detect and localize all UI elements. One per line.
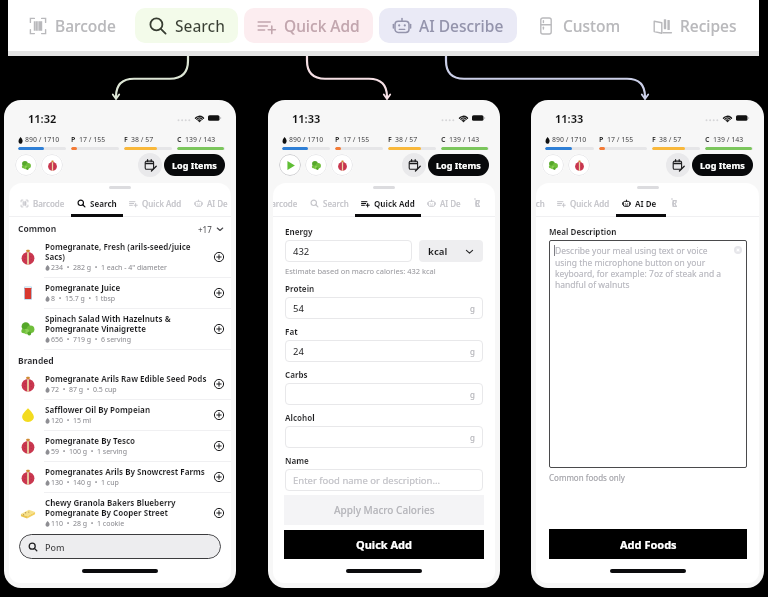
- button[interactable]: Calendar: [402, 153, 426, 177]
- button[interactable]: Search: [135, 8, 238, 43]
- staticText: Apply Macro Calories: [334, 503, 435, 517]
- button[interactable]: Pomegranate Arils Raw Edible Seed Pods: [9, 369, 231, 399]
- button[interactable]: Pomegranate By Tesco: [9, 431, 231, 461]
- staticText: Energy: [285, 226, 313, 237]
- staticText: +17: [198, 224, 212, 235]
- staticText: Quick Add: [356, 537, 413, 552]
- staticText: Barcode: [55, 15, 116, 36]
- staticText: g: [470, 346, 475, 357]
- staticText: Quick Add: [374, 198, 415, 209]
- button[interactable]: AI Describe: [379, 8, 517, 43]
- staticText: Pomegranate Juice: [45, 282, 121, 293]
- button[interactable]: Food shortcut: [568, 154, 590, 176]
- button[interactable]: Custom: [523, 8, 634, 43]
- staticText: Log Items: [700, 159, 745, 171]
- button[interactable]: Apply Macro Calories: [284, 495, 484, 525]
- staticText: Barcode: [33, 198, 65, 209]
- button[interactable]: Food shortcut: [41, 154, 63, 176]
- button[interactable]: 54: [285, 297, 483, 319]
- button[interactable]: Quick Add: [551, 192, 616, 217]
- button[interactable]: Search: [71, 192, 123, 217]
- staticText: 890 / 1710: [25, 135, 60, 145]
- button[interactable]: Quick Add: [244, 8, 373, 43]
- staticText: Barcode: [273, 198, 298, 209]
- button[interactable]: Food shortcut: [305, 154, 327, 176]
- button[interactable]: Search: [536, 192, 551, 217]
- staticText: 38 / 57: [395, 135, 418, 145]
- staticText: P: [71, 135, 76, 145]
- button[interactable]: Quick Add: [284, 530, 484, 559]
- staticText: 8 • 15.7 g • 1 tbsp: [51, 294, 116, 304]
- button[interactable]: Log Items: [428, 154, 489, 176]
- staticText: 11:32: [28, 111, 57, 126]
- button[interactable]: 24: [285, 340, 483, 362]
- staticText: 54: [293, 302, 304, 315]
- staticText: Name: [285, 455, 309, 466]
- button[interactable]: AI Describe: [616, 192, 666, 217]
- staticText: 139 / 143: [185, 135, 216, 145]
- other: Add item: [214, 472, 224, 482]
- button[interactable]: Log Items: [164, 154, 225, 176]
- staticText: Search: [90, 198, 117, 209]
- button[interactable]: Quick Add: [123, 192, 188, 217]
- button[interactable]: Barcode: [273, 192, 304, 217]
- button[interactable]: Add Foods: [549, 529, 747, 559]
- staticText: F: [388, 135, 392, 145]
- staticText: Describe your meal using text or voice u…: [555, 245, 731, 291]
- button[interactable]: kcal: [419, 240, 483, 262]
- staticText: 234 • 282 g • 1 each - 4" diameter: [51, 263, 167, 273]
- button[interactable]: Enter food name or description...: [285, 469, 483, 491]
- button[interactable]: 432: [285, 240, 412, 262]
- button[interactable]: Food shortcut: [542, 154, 564, 176]
- button[interactable]: Barcode: [14, 192, 71, 217]
- button[interactable]: Log Items: [692, 154, 753, 176]
- staticText: Pomegranates Arils By Snowcrest Farms: [45, 466, 205, 477]
- button[interactable]: AI Describe: [188, 192, 231, 217]
- staticText: Alcohol: [285, 412, 315, 423]
- staticText: Quick Add: [284, 15, 360, 36]
- button[interactable]: g: [285, 383, 483, 405]
- staticText: g: [470, 303, 475, 314]
- staticText: Fat: [285, 326, 298, 337]
- staticText: 110 • 28 g • 1 cookie: [51, 519, 125, 529]
- button[interactable]: Pomegranate Juice: [9, 278, 231, 308]
- button[interactable]: Pomegranate, Fresh (arils-seed/juice Sac…: [9, 237, 231, 277]
- staticText: 38 / 57: [659, 135, 682, 145]
- other: Add item: [214, 288, 224, 298]
- button[interactable]: AI Describe: [421, 192, 469, 217]
- button[interactable]: Pom: [19, 534, 221, 559]
- button[interactable]: Calendar: [666, 153, 690, 177]
- other: Add item: [214, 441, 224, 451]
- button[interactable]: Food shortcut: [279, 154, 301, 176]
- staticText: F: [124, 135, 128, 145]
- button[interactable]: Food shortcut: [15, 154, 37, 176]
- staticText: C: [177, 135, 182, 145]
- staticText: 656 • 719 g • 6 serving: [51, 335, 131, 345]
- staticText: 11:33: [555, 111, 584, 126]
- other: Add item: [214, 508, 224, 518]
- other: Add item: [214, 324, 224, 334]
- button[interactable]: Quick Add: [355, 192, 421, 217]
- staticText: F: [652, 135, 656, 145]
- button[interactable]: Safflower Oil By Pompeian: [9, 400, 231, 430]
- button[interactable]: Pomegranates Arils By Snowcrest Farms: [9, 462, 231, 492]
- staticText: Enter food name or description...: [293, 474, 441, 487]
- staticText: g: [470, 389, 475, 400]
- button[interactable]: Calendar: [138, 153, 162, 177]
- button[interactable]: Recipes: [640, 8, 750, 43]
- button[interactable]: Chewy Granola Bakers Blueberry Pomegrana…: [9, 493, 231, 533]
- button[interactable]: Barcode: [15, 8, 129, 43]
- button[interactable]: Spinach Salad With Hazelnuts & Pomegrana…: [9, 309, 231, 349]
- staticText: Add Foods: [620, 537, 677, 552]
- staticText: 120 • 15 ml: [51, 416, 92, 426]
- staticText: P: [599, 135, 604, 145]
- button[interactable]: Search: [304, 192, 355, 217]
- staticText: Protein: [285, 283, 315, 294]
- staticText: 24: [293, 345, 304, 358]
- staticText: 139 / 143: [713, 135, 744, 145]
- button[interactable]: g: [285, 426, 483, 448]
- staticText: Estimate based on macro calories: 432 kc…: [285, 266, 436, 276]
- button[interactable]: Food shortcut: [331, 154, 353, 176]
- button[interactable]: Describe your meal using text or voice u…: [549, 240, 747, 468]
- staticText: 432: [293, 245, 310, 258]
